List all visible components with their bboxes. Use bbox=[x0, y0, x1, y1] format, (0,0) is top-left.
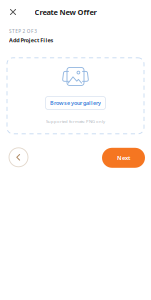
button[interactable]: Back bbox=[9, 148, 28, 167]
staticText: Create New Offer bbox=[34, 7, 96, 17]
staticText: Next bbox=[117, 154, 130, 162]
button[interactable]: Close bbox=[5, 4, 20, 19]
button[interactable]: Next bbox=[102, 148, 145, 168]
staticText: STEP 2 OF 3 bbox=[9, 28, 37, 34]
button[interactable]: Browse your gallery bbox=[45, 96, 105, 109]
staticText: Add Project Files bbox=[9, 36, 54, 44]
staticText: Supported formats: PNG only bbox=[46, 118, 105, 124]
staticText: Browse your gallery bbox=[50, 99, 101, 107]
